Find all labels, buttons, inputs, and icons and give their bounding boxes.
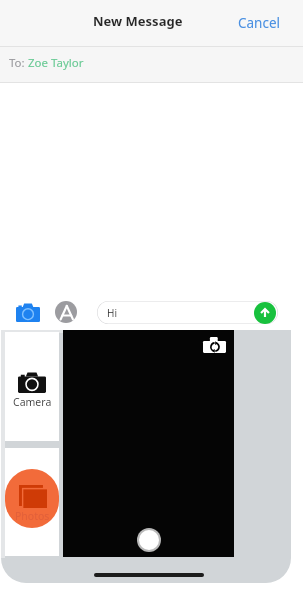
staticText: To: bbox=[9, 55, 28, 71]
button[interactable]: Photos bbox=[5, 448, 59, 556]
staticText: New Message bbox=[93, 12, 183, 30]
staticText: Cancel bbox=[238, 14, 281, 32]
staticText: Camera bbox=[13, 395, 52, 409]
button[interactable]: Switch camera bbox=[199, 332, 229, 358]
button[interactable]: To: bbox=[0, 47, 303, 82]
button[interactable]: Take photo bbox=[137, 528, 161, 552]
button[interactable]: Hi bbox=[97, 301, 278, 324]
button[interactable]: Send bbox=[254, 302, 276, 324]
button[interactable]: Camera bbox=[5, 332, 59, 441]
staticText: Zoe Taylor bbox=[28, 55, 84, 71]
button[interactable]: App Store bbox=[53, 299, 79, 325]
staticText: Hi bbox=[107, 306, 117, 320]
button[interactable]: Camera bbox=[12, 299, 44, 325]
button[interactable]: Cancel bbox=[232, 7, 287, 39]
staticText: Photos bbox=[15, 509, 50, 523]
